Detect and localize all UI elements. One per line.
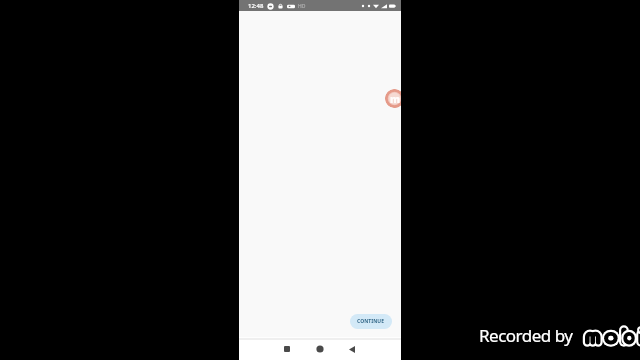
staticText: CONTINUE bbox=[357, 318, 385, 325]
staticText: 12:48 bbox=[248, 2, 264, 10]
staticText: HD bbox=[298, 3, 306, 10]
button[interactable]: CONTINUE bbox=[350, 314, 392, 329]
staticText: m bbox=[390, 92, 400, 106]
button[interactable]: Recents bbox=[278, 340, 296, 358]
staticText: Recorded by bbox=[479, 324, 573, 347]
button[interactable]: Mobizen recorder bbox=[385, 89, 401, 108]
button[interactable]: Back bbox=[343, 340, 361, 358]
button[interactable]: Home bbox=[311, 340, 329, 358]
